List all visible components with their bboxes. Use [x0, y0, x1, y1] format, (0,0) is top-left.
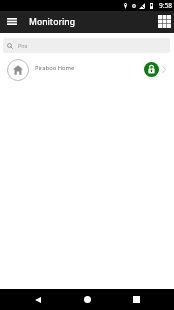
staticText: Piraboo Home [35, 64, 75, 72]
button[interactable]: Open navigation menu [1, 11, 22, 32]
button[interactable]: Home [75, 289, 99, 310]
button[interactable]: Grid view [155, 12, 174, 31]
button[interactable]: Back [26, 289, 50, 310]
staticText: Pira [18, 42, 28, 49]
staticText: 9:58 [159, 1, 173, 10]
button[interactable]: Piraboo Home [0, 56, 174, 83]
button[interactable]: Recent apps [124, 289, 148, 310]
button[interactable]: Pira [3, 38, 170, 53]
staticText: Monitoring [29, 16, 76, 28]
